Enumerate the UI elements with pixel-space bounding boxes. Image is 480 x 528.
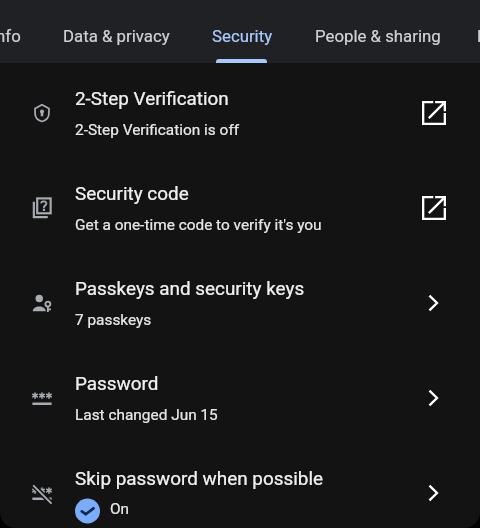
- button[interactable]: Passkeys and security keys: [0, 253, 480, 348]
- button[interactable]: Security code: [0, 158, 480, 253]
- staticText: 2-Step Verification is off: [75, 121, 240, 139]
- staticText: Passkeys and security keys: [75, 277, 305, 299]
- other: Open in new window: [422, 101, 446, 125]
- button[interactable]: Payments: [456, 0, 480, 63]
- staticText: Password: [75, 372, 159, 394]
- staticText: Data & privacy: [63, 26, 170, 46]
- button[interactable]: Password: [0, 348, 480, 443]
- button[interactable]: 2-Step Verification: [0, 63, 480, 158]
- staticText: People & sharing: [315, 26, 441, 46]
- button[interactable]: People & sharing: [294, 0, 462, 63]
- staticText: Payments: [477, 26, 480, 46]
- other: Open: [422, 386, 446, 410]
- staticText: 2-Step Verification: [75, 87, 229, 109]
- staticText: Personal info: [0, 26, 21, 46]
- staticText: On: [110, 500, 130, 518]
- button[interactable]: Skip password when possible: [0, 443, 480, 528]
- other: Open: [422, 481, 446, 505]
- button[interactable]: Data & privacy: [42, 0, 191, 63]
- staticText: Security: [212, 26, 273, 46]
- staticText: 7 passkeys: [75, 311, 152, 329]
- staticText: Last changed Jun 15: [75, 406, 218, 424]
- other: Open: [422, 291, 446, 315]
- other: Open in new window: [422, 196, 446, 220]
- button[interactable]: Security: [191, 0, 294, 63]
- staticText: Security code: [75, 182, 189, 204]
- staticText: Skip password when possible: [75, 467, 324, 489]
- staticText: Get a one-time code to verify it's you: [75, 216, 322, 234]
- button[interactable]: Personal info: [0, 0, 42, 63]
